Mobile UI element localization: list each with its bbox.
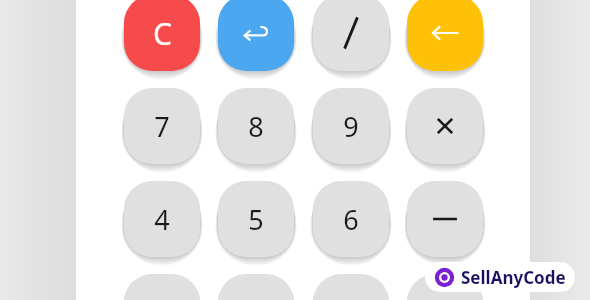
button[interactable]: 5 [218,181,294,257]
staticText: C [153,13,172,54]
button[interactable]: Divide [313,0,389,71]
staticText: 9 [343,108,359,145]
button[interactable]: Enter [218,0,294,71]
button[interactable]: 7 [124,88,200,164]
button[interactable]: 3 [313,274,389,300]
staticText: 4 [154,201,170,238]
staticText: 6 [343,201,359,238]
staticText: SellAnyCode [461,266,566,289]
staticText: 7 [154,108,170,145]
button[interactable]: SellAnyCode [425,262,575,292]
staticText: 8 [248,108,264,145]
button[interactable]: Clear [124,0,200,71]
button[interactable]: Multiply [407,88,483,164]
button[interactable]: 6 [313,181,389,257]
button[interactable]: Backspace [407,0,483,71]
button[interactable]: Add [407,274,483,300]
button[interactable]: 4 [124,181,200,257]
button[interactable]: Subtract [407,181,483,257]
button[interactable]: 9 [313,88,389,164]
staticText: 5 [248,201,264,238]
button[interactable]: 8 [218,88,294,164]
button[interactable]: 1 [124,274,200,300]
button[interactable]: 2 [218,274,294,300]
